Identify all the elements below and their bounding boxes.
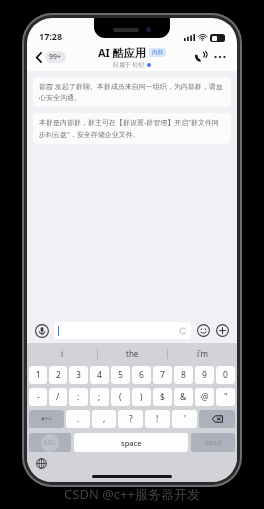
button[interactable]: Call	[191, 48, 209, 66]
button[interactable]: :	[69, 388, 88, 406]
button[interactable]: "	[216, 388, 235, 406]
button[interactable]	[54, 322, 191, 339]
staticText: :	[77, 391, 80, 403]
button[interactable]: 8	[174, 366, 193, 384]
staticText: ,	[103, 413, 106, 425]
staticText: .	[77, 413, 80, 425]
staticText: ;	[98, 391, 101, 403]
staticText: )	[140, 391, 143, 403]
staticText: "	[224, 391, 228, 403]
button[interactable]: &	[174, 388, 193, 406]
button[interactable]: )	[132, 388, 151, 406]
staticText: 9	[202, 369, 207, 381]
button[interactable]: /	[49, 388, 67, 406]
button[interactable]: .	[66, 410, 90, 428]
staticText: ABC	[43, 438, 57, 448]
staticText: @	[201, 391, 209, 403]
button[interactable]: ;	[90, 388, 109, 406]
button[interactable]: send	[191, 433, 235, 452]
staticText: space	[121, 438, 142, 448]
button[interactable]: 6	[132, 366, 151, 384]
button[interactable]: 9	[195, 366, 214, 384]
button[interactable]: $	[153, 388, 172, 406]
button[interactable]: 1	[29, 366, 47, 384]
staticText: i'm	[197, 348, 209, 359]
staticText: 5	[118, 369, 123, 381]
button[interactable]: 3	[69, 366, 88, 384]
staticText: 3	[76, 369, 81, 381]
button[interactable]: 7	[153, 366, 172, 384]
button[interactable]: #+=	[29, 410, 64, 428]
staticText: 部霞 发起了群聊。本群成员来自同一组织，为内部群，请放心安全沟通。	[39, 82, 225, 102]
button[interactable]: !	[145, 410, 170, 428]
staticText: &	[180, 391, 187, 403]
button[interactable]: 2	[49, 366, 67, 384]
staticText: -	[37, 391, 40, 403]
staticText: 4	[97, 369, 102, 381]
staticText: (	[119, 391, 122, 403]
button[interactable]: More options	[211, 48, 229, 66]
staticText: 1	[36, 369, 41, 381]
staticText: '	[184, 413, 186, 425]
button[interactable]: Back, 99+ unread	[34, 48, 68, 66]
staticText: 0	[223, 369, 228, 381]
button[interactable]: 4	[90, 366, 109, 384]
button[interactable]: @	[195, 388, 214, 406]
staticText: !	[156, 413, 159, 425]
button[interactable]: i'm	[168, 343, 237, 364]
staticText: the	[126, 348, 139, 359]
button[interactable]: 部霞 发起了群聊。本群成员来自同一组织，为内部群，请放心安全沟通。	[33, 77, 231, 107]
button[interactable]: 0	[216, 366, 235, 384]
button[interactable]: 本群是内部群，群主可在【群设置-群管理】开启"群文件同步到云盘"，安全存储企业文…	[33, 113, 231, 144]
staticText: 99+	[49, 52, 62, 62]
button[interactable]: ABC	[29, 433, 71, 452]
staticText: 归属于 钉钉	[113, 61, 145, 69]
button[interactable]: i	[27, 343, 97, 364]
button[interactable]: the	[98, 343, 167, 364]
staticText: 2	[56, 369, 61, 381]
staticText: CSDN @c++服务器开发	[64, 485, 200, 503]
staticText: 17:28	[39, 30, 63, 42]
staticText: #+=	[41, 415, 52, 423]
button[interactable]: (	[111, 388, 130, 406]
button[interactable]: 5	[111, 366, 130, 384]
staticText: send	[205, 438, 221, 448]
staticText: 8	[181, 369, 186, 381]
button[interactable]: ?	[118, 410, 143, 428]
button[interactable]: -	[29, 388, 47, 406]
button[interactable]: More actions	[214, 322, 231, 339]
staticText: 7	[160, 369, 165, 381]
staticText: $	[160, 391, 165, 403]
button[interactable]: ,	[92, 410, 116, 428]
staticText: 本群是内部群，群主可在【群设置-群管理】开启"群文件同步到云盘"，安全存储企业文…	[39, 118, 225, 139]
button[interactable]: Voice input	[33, 322, 50, 339]
staticText: i	[61, 348, 64, 359]
staticText: AI 酷应用	[98, 45, 146, 60]
button[interactable]: Switch keyboard language	[34, 456, 48, 470]
button[interactable]: space	[74, 433, 188, 452]
staticText: ?	[129, 413, 133, 425]
button[interactable]: Emoji	[195, 322, 212, 339]
button[interactable]: '	[172, 410, 197, 428]
staticText: 6	[139, 369, 144, 381]
button[interactable]: Backspace	[199, 410, 235, 428]
staticText: /	[56, 391, 60, 403]
staticText: 内部	[152, 49, 163, 56]
